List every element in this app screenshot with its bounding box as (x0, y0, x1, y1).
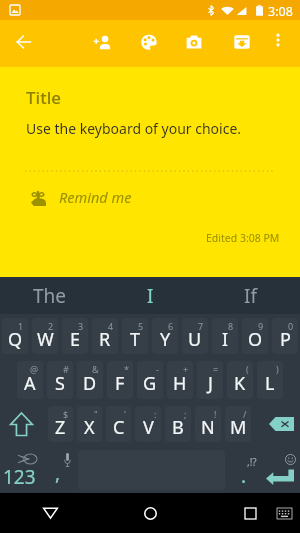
staticText: Remind me (59, 187, 132, 207)
button[interactable]: , (46, 450, 77, 490)
staticText: ' (124, 408, 127, 420)
staticText: M (230, 415, 247, 440)
staticText: W (37, 327, 54, 352)
staticText: N (201, 415, 215, 440)
staticText: E (70, 327, 81, 352)
staticText: 7 (198, 320, 204, 332)
button[interactable]: More options (258, 20, 298, 60)
button[interactable]: * (107, 361, 133, 399)
staticText: ,!? (247, 455, 257, 469)
staticText: R (99, 327, 111, 352)
button[interactable]: " (77, 406, 102, 442)
staticText: - (156, 363, 159, 375)
button[interactable]: I (100, 277, 200, 314)
button[interactable]: Back (0, 493, 100, 533)
button[interactable]: / (225, 406, 251, 442)
button[interactable]: If (200, 277, 300, 314)
button[interactable]: + (167, 361, 193, 399)
staticText: V (143, 415, 154, 440)
button[interactable]: 2 (32, 318, 58, 354)
staticText: I (147, 283, 154, 309)
staticText: I (222, 327, 229, 352)
button[interactable]: Enter (257, 450, 300, 490)
staticText: 1 (18, 320, 24, 332)
staticText: Use the keyboard of your choice. (26, 119, 242, 138)
staticText: 4 (108, 320, 114, 332)
staticText: / (243, 408, 247, 420)
staticText: P (280, 327, 291, 352)
button[interactable]: Recents (200, 493, 300, 533)
staticText: J (208, 371, 213, 396)
button[interactable]: Switch keyboard (268, 497, 300, 529)
button[interactable]: Back (2, 20, 46, 64)
staticText: & (92, 363, 99, 375)
staticText: T (130, 327, 141, 352)
button[interactable]: 1 (2, 318, 28, 354)
button[interactable]: ( (227, 361, 253, 399)
staticText: B (172, 415, 184, 440)
button[interactable]: 5 (122, 318, 148, 354)
staticText: Title (26, 86, 62, 109)
staticText: ; (184, 408, 187, 420)
button[interactable]: $ (48, 406, 73, 442)
staticText: Z (55, 415, 66, 440)
staticText: Y (160, 327, 171, 352)
staticText: A (24, 371, 36, 396)
button[interactable]: 3 (62, 318, 88, 354)
button[interactable]: 123 (0, 450, 46, 490)
staticText: S (55, 371, 65, 396)
button[interactable]: @ (17, 361, 43, 399)
staticText: ) (276, 363, 279, 375)
staticText: # (63, 363, 69, 375)
button[interactable]: Home (100, 493, 200, 533)
staticText: 123 (3, 464, 36, 490)
button[interactable]: Colour palette (127, 20, 171, 64)
staticText: L (265, 371, 275, 396)
button[interactable]: ' (106, 406, 131, 442)
button[interactable]: Archive (220, 20, 264, 64)
staticText: = (213, 363, 219, 375)
button[interactable]: Camera (172, 20, 216, 64)
button[interactable]: Backspace (253, 405, 300, 443)
button[interactable]: ; (165, 406, 191, 442)
button[interactable]: # (47, 361, 73, 399)
staticText: The (33, 283, 67, 309)
staticText: " (94, 408, 98, 420)
button[interactable]: The (0, 277, 100, 314)
staticText: Q (8, 327, 23, 352)
button[interactable]: : (135, 406, 161, 442)
staticText: U (188, 327, 202, 352)
staticText: O (248, 327, 263, 352)
staticText: 2 (48, 320, 54, 332)
staticText: ( (246, 363, 249, 375)
staticText: : (154, 408, 157, 420)
staticText: H (173, 371, 187, 396)
button[interactable]: ! (195, 406, 221, 442)
button[interactable]: Shift (0, 405, 46, 443)
button[interactable]: Add collaborator (80, 20, 124, 64)
staticText: ! (214, 408, 217, 420)
staticText: 3 (78, 320, 84, 332)
button[interactable]: = (197, 361, 223, 399)
staticText: G (143, 371, 157, 396)
button[interactable]: - (137, 361, 163, 399)
staticText: * (124, 363, 129, 375)
staticText: + (183, 363, 189, 375)
button[interactable]: 0 (272, 318, 298, 354)
staticText: K (234, 371, 246, 396)
button[interactable]: 7 (182, 318, 208, 354)
staticText: 6 (168, 320, 174, 332)
staticText: . (241, 463, 247, 489)
staticText: F (115, 371, 125, 396)
button[interactable]: 9 (242, 318, 268, 354)
button[interactable]: Remind me (0, 180, 300, 214)
staticText: 8 (228, 320, 234, 332)
staticText: Edited 3:08 PM (206, 231, 280, 245)
button[interactable]: 4 (92, 318, 118, 354)
button[interactable]: 8 (212, 318, 238, 354)
button[interactable]: 6 (152, 318, 178, 354)
button[interactable]: ) (257, 361, 283, 399)
button[interactable]: ,!? (226, 450, 257, 490)
button[interactable]: & (77, 361, 103, 399)
